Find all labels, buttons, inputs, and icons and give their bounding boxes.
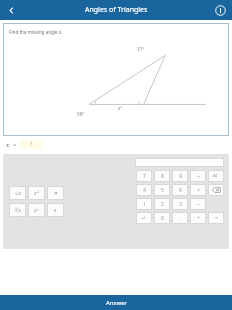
staticText: xʸ: [34, 207, 39, 214]
button[interactable]: xʸ: [28, 203, 45, 217]
staticText: ×: [197, 187, 200, 194]
staticText: 8: [161, 173, 164, 180]
button[interactable]: Back: [0, 0, 22, 20]
staticText: e: [54, 207, 57, 214]
staticText: Find the missing angle x.: [9, 29, 63, 35]
button[interactable]: 8: [154, 170, 170, 182]
staticText: 1: [143, 201, 146, 208]
staticText: 31°: [137, 46, 145, 52]
button[interactable]: 3: [172, 198, 188, 210]
button[interactable]: ÷: [190, 170, 206, 182]
button[interactable]: ×: [190, 184, 206, 196]
staticText: =: [215, 215, 218, 222]
button[interactable]: x²: [28, 186, 45, 200]
staticText: +: [197, 215, 200, 222]
staticText: AC: [213, 173, 219, 179]
staticText: √x: [15, 190, 21, 197]
button[interactable]: Backspace: [208, 184, 224, 196]
staticText: 6: [179, 187, 182, 194]
staticText: 7: [143, 173, 146, 180]
button[interactable]: =: [208, 212, 224, 224]
button[interactable]: 4: [136, 184, 152, 196]
staticText: ?: [30, 141, 33, 148]
staticText: x°: [118, 105, 123, 111]
button[interactable]: 5: [154, 184, 170, 196]
staticText: 5: [161, 187, 164, 194]
staticText: 2: [161, 201, 164, 208]
staticText: =: [13, 141, 17, 149]
button[interactable]: e: [47, 203, 64, 217]
button[interactable]: +: [190, 212, 206, 224]
staticText: 59°: [77, 111, 85, 117]
button[interactable]: 2: [154, 198, 170, 210]
button[interactable]: .: [172, 212, 188, 224]
button[interactable]: 1: [136, 198, 152, 210]
button[interactable]: −: [190, 198, 206, 210]
button[interactable]: AC: [208, 170, 224, 182]
staticText: .: [179, 215, 181, 222]
button[interactable]: 0: [154, 212, 170, 224]
staticText: π: [54, 190, 58, 197]
button[interactable]: 6: [172, 184, 188, 196]
staticText: x: [6, 141, 10, 149]
button[interactable]: 7: [136, 170, 152, 182]
staticText: 4: [143, 187, 146, 194]
button[interactable]: π: [47, 186, 64, 200]
button[interactable]: Info: [208, 0, 232, 20]
button[interactable]: 9: [172, 170, 188, 182]
button[interactable]: ?: [20, 140, 42, 149]
staticText: ÷: [197, 173, 200, 180]
staticText: Angles of Triangles: [85, 5, 148, 15]
staticText: Answer: [106, 299, 127, 307]
staticText: 3: [179, 201, 182, 208]
staticText: ∛x: [15, 207, 21, 214]
staticText: −: [197, 201, 200, 208]
staticText: 9: [179, 173, 182, 180]
staticText: +/-: [141, 215, 147, 221]
button[interactable]: Answer: [0, 295, 232, 310]
staticText: 0: [161, 215, 164, 222]
staticText: x²: [34, 190, 39, 197]
button[interactable]: √x: [9, 186, 26, 200]
button[interactable]: Expression field: [135, 158, 224, 167]
button[interactable]: ∛x: [9, 203, 26, 217]
button[interactable]: +/-: [136, 212, 152, 224]
